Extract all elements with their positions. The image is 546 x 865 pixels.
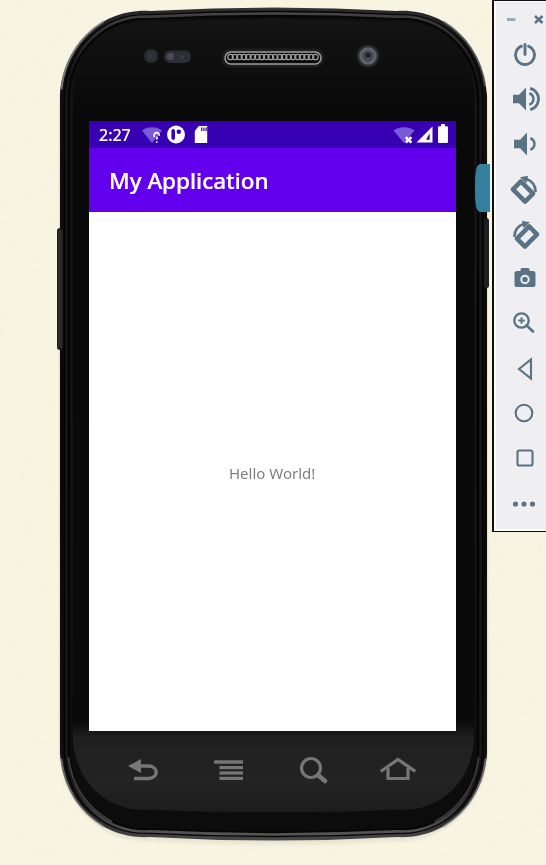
- staticText: My Application: [109, 165, 269, 196]
- staticText: 2:27: [99, 124, 131, 146]
- button[interactable]: My Application: [89, 148, 456, 212]
- staticText: Hello World!: [229, 463, 316, 483]
